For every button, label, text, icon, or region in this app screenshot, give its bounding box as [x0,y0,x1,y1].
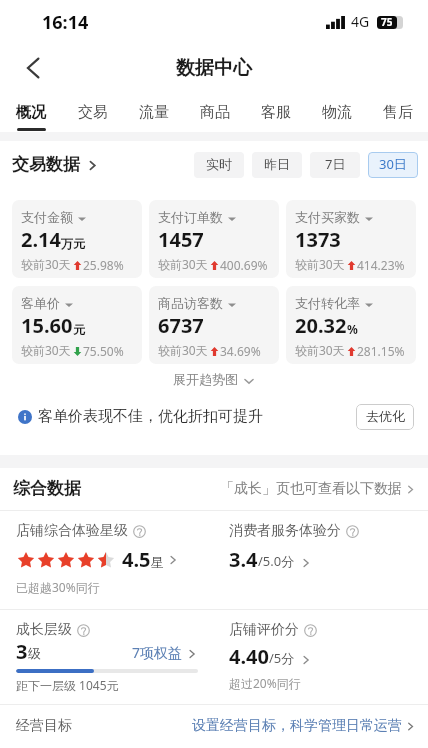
button[interactable]: 支付买家数 [286,200,416,278]
staticText: 支付买家数 [295,211,360,226]
button[interactable]: 30日 [368,152,418,178]
button[interactable]: 7日 [310,152,360,178]
staticText: 2.14 [21,228,61,252]
staticText: 商品 [200,104,230,122]
staticText: 店铺综合体验星级 [16,523,128,540]
staticText: 超过20%同行 [229,677,301,692]
staticText: 昨日 [264,158,290,173]
button[interactable]: 「成长」页也可查看以下数据 [220,481,416,498]
button[interactable]: 设置经营目标，科学管理日常运营 [192,718,416,735]
staticText: /5分 [269,651,295,667]
staticText: 成长层级 [16,622,72,639]
staticText: 客服 [261,104,291,122]
staticText: 消费者服务体验分 [229,523,341,540]
staticText: 概况 [16,104,46,122]
staticText: 已超越30%同行 [16,581,100,596]
staticText: 物流 [322,104,352,122]
staticText: 3.4 [229,548,258,572]
staticText: 16:14 [42,12,89,33]
staticText: 较前30天 [158,344,208,359]
staticText: 设置经营目标，科学管理日常运营 [192,718,402,735]
staticText: 支付转化率 [295,297,360,312]
staticText: 4.5 [122,548,151,572]
staticText: 较前30天 [295,258,345,273]
staticText: 1373 [295,228,341,252]
button[interactable]: 实时 [194,152,244,178]
staticText: 25.98% [83,259,124,273]
button[interactable]: 消费者服务体验分 [214,511,428,609]
staticText: 7日 [325,157,346,173]
staticText: 20.32 [295,314,347,338]
staticText: 1457 [158,228,204,252]
staticText: 综合数据 [13,479,81,499]
staticText: 4G [351,14,370,31]
staticText: 30日 [379,157,407,173]
staticText: 4.40 [229,645,269,669]
staticText: 客单价 [21,297,60,312]
staticText: 较前30天 [21,258,71,273]
staticText: /5.0分 [258,554,295,570]
staticText: 7项权益 [132,645,183,662]
button[interactable]: 展开趋势图 [173,373,255,388]
staticText: 万元 [61,237,85,251]
staticText: 15.60 [21,314,73,338]
staticText: 「成长」页也可查看以下数据 [220,481,402,498]
staticText: 75.50% [83,345,124,359]
staticText: 6737 [158,314,204,338]
button[interactable]: 支付金额 [12,200,142,278]
staticText: 去优化 [366,410,405,425]
button[interactable]: 店铺评价分 [214,610,428,704]
button[interactable]: 交易 [62,92,123,132]
button[interactable]: Back [27,46,71,90]
staticText: 星 [151,556,164,571]
staticText: 数据中心 [176,57,252,79]
staticText: 商品访客数 [158,297,223,312]
staticText: 元 [73,323,85,337]
staticText: 较前30天 [158,258,208,273]
button[interactable]: 店铺综合体验星级 [0,511,214,609]
button[interactable]: 交易数据 [12,155,99,175]
staticText: 3 [16,640,28,664]
staticText: 281.15% [357,345,405,359]
button[interactable]: 成长层级 [0,610,214,704]
button[interactable]: 售后 [367,92,428,132]
button[interactable]: 商品访客数 [149,286,279,364]
button[interactable]: 客单价 [12,286,142,364]
button[interactable]: 客服 [245,92,306,132]
staticText: % [347,323,358,337]
staticText: 支付金额 [21,211,73,226]
button[interactable]: 去优化 [356,404,414,430]
button[interactable]: 支付订单数 [149,200,279,278]
staticText: 交易数据 [12,155,80,175]
staticText: 客单价表现不佳，优化折扣可提升 [38,408,263,426]
button[interactable]: 支付转化率 [286,286,416,364]
staticText: 400.69% [220,259,268,273]
staticText: 距下一层级 1045元 [16,679,119,694]
button[interactable]: 概况 [0,92,62,132]
staticText: 414.23% [357,259,405,273]
staticText: 34.69% [220,345,261,359]
staticText: 较前30天 [21,344,71,359]
staticText: 交易 [78,104,108,122]
staticText: 展开趋势图 [173,373,238,388]
staticText: 较前30天 [295,344,345,359]
button[interactable]: 昨日 [252,152,302,178]
button[interactable]: 流量 [123,92,184,132]
staticText: 75 [381,17,393,29]
button[interactable]: 7项权益 [132,645,198,662]
button[interactable]: 商品 [184,92,245,132]
staticText: 实时 [206,158,232,173]
staticText: 级 [28,647,41,662]
staticText: 售后 [383,104,413,122]
staticText: 流量 [139,104,169,122]
button[interactable]: 物流 [306,92,367,132]
staticText: 店铺评价分 [229,622,299,639]
staticText: 经营目标 [16,718,72,735]
staticText: 支付订单数 [158,211,223,226]
